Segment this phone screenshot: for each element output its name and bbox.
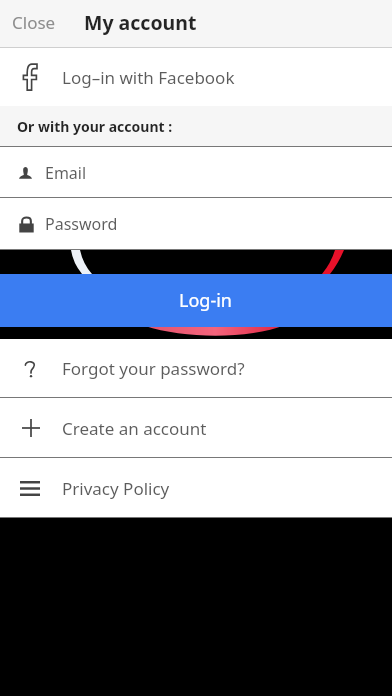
staticText: Or with your account : — [17, 117, 173, 136]
button[interactable]: Log–in with Facebook — [0, 48, 392, 106]
staticText: Log–in with Facebook — [62, 66, 235, 89]
button[interactable]: Privacy Policy — [0, 458, 392, 518]
button[interactable]: Close — [0, 5, 68, 40]
staticText: Email — [45, 162, 87, 184]
button[interactable]: Create an account — [0, 398, 392, 458]
button[interactable]: Log-in — [0, 274, 392, 327]
staticText: Log-in — [179, 288, 232, 313]
staticText: My account — [84, 9, 197, 36]
button[interactable]: Email — [0, 147, 392, 198]
button[interactable]: Password — [0, 198, 392, 250]
staticText: Password — [45, 213, 118, 235]
staticText: Create an account — [62, 417, 207, 440]
staticText: Privacy Policy — [62, 477, 170, 500]
staticText: Close — [12, 11, 56, 34]
staticText: Forgot your password? — [62, 357, 245, 380]
button[interactable]: Forgot your password? — [0, 339, 392, 398]
